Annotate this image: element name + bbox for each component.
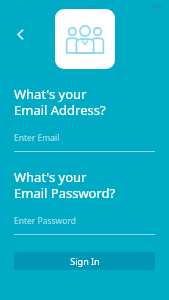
button[interactable]: Back bbox=[7, 21, 33, 47]
staticText: Enter Password bbox=[14, 215, 77, 227]
staticText: Enter Email bbox=[14, 132, 60, 144]
button[interactable]: Enter Password bbox=[14, 215, 155, 235]
button[interactable]: Sign In bbox=[14, 252, 155, 270]
staticText: What's your Email Address? bbox=[14, 85, 106, 119]
staticText: What's your Email Password? bbox=[14, 168, 116, 202]
staticText: 8:35 PM bbox=[73, 3, 96, 11]
button[interactable]: Enter Email bbox=[14, 132, 155, 152]
staticText: Sign In bbox=[70, 255, 100, 267]
